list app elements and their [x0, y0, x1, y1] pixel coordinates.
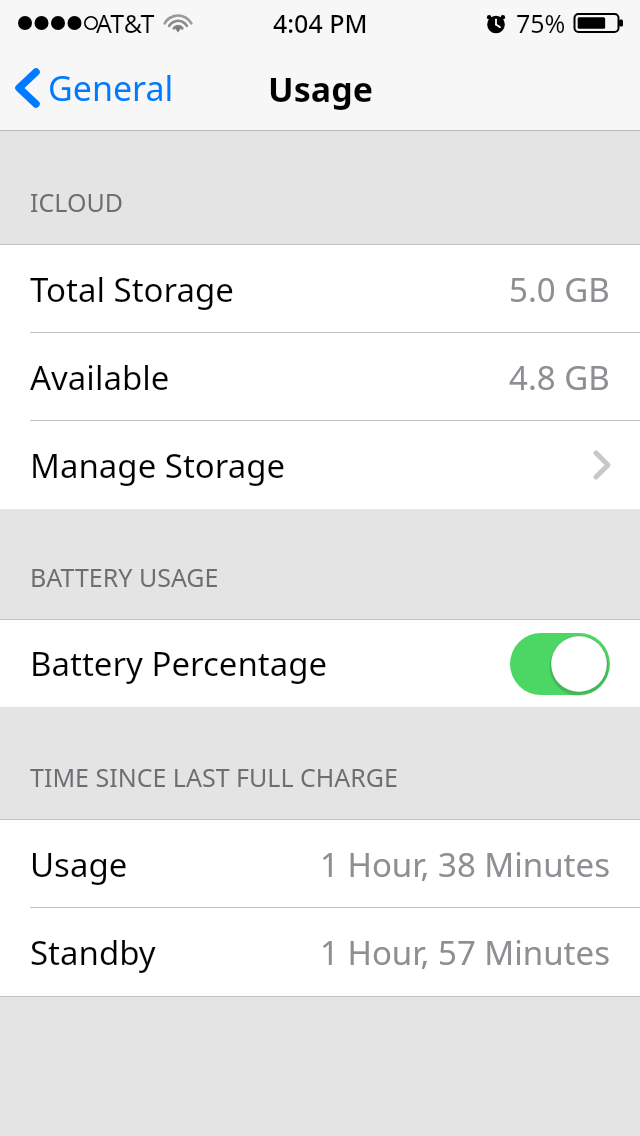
staticText: 5.0 GB — [509, 267, 610, 312]
button[interactable]: Usage — [0, 820, 640, 908]
staticText: BATTERY USAGE — [30, 560, 219, 594]
button[interactable]: Manage Storage — [0, 421, 640, 509]
staticText: 1 Hour, 38 Minutes — [320, 842, 610, 887]
staticText: Manage Storage — [30, 443, 286, 488]
button[interactable]: General — [0, 57, 186, 119]
staticText: 4:04 PM — [273, 6, 368, 40]
staticText: 1 Hour, 57 Minutes — [320, 930, 610, 975]
staticText: Usage — [268, 66, 373, 112]
staticText: Battery Percentage — [30, 641, 328, 686]
staticText: Available — [30, 355, 170, 400]
staticText: 4.8 GB — [509, 355, 610, 400]
staticText: ICLOUD — [30, 185, 123, 219]
staticText: 75% — [516, 6, 566, 40]
staticText: TIME SINCE LAST FULL CHARGE — [30, 760, 398, 794]
staticText: Standby — [30, 930, 156, 975]
button[interactable]: Battery Percentage toggle, on — [510, 633, 610, 695]
button[interactable]: Available — [0, 333, 640, 421]
staticText: Total Storage — [30, 267, 234, 312]
staticText: AT&T — [96, 6, 155, 40]
staticText: General — [48, 65, 174, 111]
button[interactable]: Total Storage — [0, 245, 640, 333]
staticText: Usage — [30, 842, 128, 887]
button[interactable]: Standby — [0, 908, 640, 996]
